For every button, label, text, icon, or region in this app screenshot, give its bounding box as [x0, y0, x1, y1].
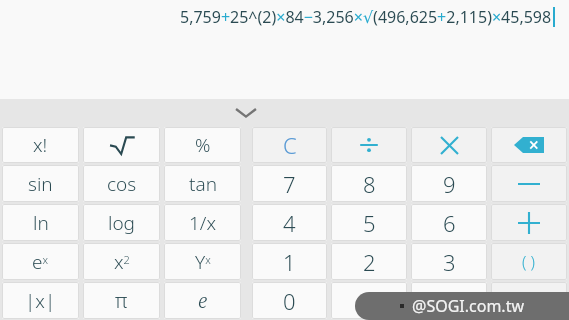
button[interactable]: Collapse keypad [229, 101, 263, 125]
staticText: +/− [436, 289, 462, 312]
staticText: ex [32, 249, 49, 275]
button[interactable]: Divide [331, 127, 407, 163]
button[interactable]: Multiply [411, 127, 487, 163]
button[interactable]: 1 [252, 243, 327, 280]
button[interactable]: 3 [411, 243, 487, 280]
staticText: % [195, 132, 211, 158]
button[interactable]: cos [83, 165, 160, 202]
button[interactable]: Backspace [491, 127, 567, 163]
button[interactable]: 4 [252, 204, 327, 241]
staticText: 5,759+25^(2)×84−3,256×√(496,625+2,115)×4… [180, 6, 552, 28]
button[interactable]: Equals [491, 282, 567, 319]
staticText: 8 [363, 169, 376, 199]
button[interactable]: C [252, 127, 327, 163]
button[interactable]: x! [2, 127, 79, 163]
staticText: ( ) [522, 251, 536, 273]
staticText: 4 [283, 208, 296, 238]
button[interactable]: ex [2, 243, 79, 280]
staticText: ln [33, 210, 49, 236]
staticText: cos [107, 171, 137, 197]
button[interactable]: 0 [252, 282, 327, 319]
staticText: tan [189, 171, 217, 197]
staticText: @SOGI.com.tw [412, 295, 524, 317]
staticText: 6 [443, 208, 456, 238]
button[interactable]: . [331, 282, 407, 319]
staticText: 5 [363, 208, 376, 238]
staticText: |x| [25, 288, 56, 314]
staticText: 3 [443, 247, 456, 277]
staticText: 1 [283, 247, 296, 277]
staticText: sin [28, 171, 53, 197]
staticText: Yx [195, 249, 211, 275]
button[interactable]: 7 [252, 165, 327, 202]
staticText: C [283, 130, 297, 160]
button[interactable]: tan [164, 165, 241, 202]
button[interactable]: +/− [411, 282, 487, 319]
staticText: 0 [283, 286, 296, 316]
button[interactable]: ln [2, 204, 79, 241]
button[interactable]: 5 [331, 204, 407, 241]
button[interactable]: log [83, 204, 160, 241]
staticText: e [198, 287, 208, 314]
button[interactable]: Minus [491, 165, 567, 202]
button[interactable]: 1/x [164, 204, 241, 241]
staticText: . [366, 286, 372, 316]
button[interactable]: 2 [331, 243, 407, 280]
button[interactable]: 9 [411, 165, 487, 202]
staticText: 9 [443, 169, 456, 199]
staticText: log [108, 210, 135, 236]
button[interactable]: Yx [164, 243, 241, 280]
button[interactable]: e [164, 282, 241, 319]
staticText: 7 [283, 169, 296, 199]
staticText: π [115, 287, 128, 314]
button[interactable]: 8 [331, 165, 407, 202]
button[interactable]: % [164, 127, 241, 163]
button[interactable]: 6 [411, 204, 487, 241]
button[interactable]: sin [2, 165, 79, 202]
staticText: 2 [363, 247, 376, 277]
button[interactable]: Square root [83, 127, 160, 163]
button[interactable]: Plus [491, 204, 567, 241]
staticText: 1/x [189, 210, 217, 236]
button[interactable]: |x| [2, 282, 79, 319]
button[interactable]: ( ) [491, 243, 567, 280]
staticText: x! [33, 132, 48, 158]
button[interactable]: x2 [83, 243, 160, 280]
button[interactable]: π [83, 282, 160, 319]
staticText: x2 [114, 249, 130, 275]
